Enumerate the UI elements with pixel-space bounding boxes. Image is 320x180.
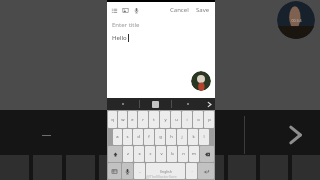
button[interactable]: Profile photo (191, 71, 211, 91)
staticText: x (138, 151, 141, 157)
button[interactable]: b (167, 146, 177, 162)
button[interactable]: p (204, 111, 214, 128)
staticText: n (182, 151, 185, 157)
staticText: English (160, 169, 172, 174)
staticText: o (197, 117, 200, 123)
button[interactable]: More suggestions (203, 98, 215, 110)
staticText: Cancel (170, 6, 189, 14)
button[interactable]: Insert image (121, 6, 130, 15)
button[interactable]: k (188, 129, 198, 145)
button[interactable]: , (134, 163, 145, 179)
staticText: r (142, 117, 144, 123)
button[interactable]: Space (146, 163, 185, 179)
button[interactable]: . (186, 163, 197, 179)
staticText: i (186, 117, 188, 123)
button[interactable]: n (178, 146, 188, 162)
staticText: l (203, 134, 205, 140)
button[interactable]: Cancel (168, 4, 191, 16)
button[interactable]: l (199, 129, 209, 145)
staticText: g (159, 134, 162, 140)
staticText: u (175, 117, 178, 123)
button[interactable] (172, 98, 203, 110)
staticText: p (208, 117, 211, 123)
button[interactable]: z (123, 146, 133, 162)
staticText: h (170, 134, 173, 140)
button[interactable]: w (118, 111, 127, 128)
staticText: 00:3:4 (291, 18, 302, 23)
button[interactable]: s (123, 129, 132, 145)
staticText: f (148, 134, 150, 140)
button[interactable]: x (134, 146, 144, 162)
button[interactable]: f (144, 129, 154, 145)
button[interactable]: Backspace (200, 146, 214, 162)
button[interactable]: m (189, 146, 199, 162)
button[interactable]: d (133, 129, 143, 145)
staticText: Save (196, 6, 210, 14)
staticText: d (137, 134, 140, 140)
button[interactable]: t (149, 111, 159, 128)
staticText: e (131, 117, 134, 123)
button[interactable]: Checklist (110, 6, 119, 15)
staticText: b (171, 151, 174, 157)
button[interactable]: Next video (280, 120, 310, 150)
staticText: t (153, 117, 155, 123)
staticText: Enter title (112, 21, 140, 29)
staticText: s (126, 134, 129, 140)
button[interactable]: j (177, 129, 187, 145)
staticText: . (191, 168, 193, 174)
staticText: a (116, 134, 119, 140)
staticText: y (164, 117, 167, 123)
button[interactable]: y (160, 111, 170, 128)
button[interactable]: Channel thumbnail (277, 1, 315, 39)
staticText: m (192, 151, 196, 157)
button[interactable]: r (138, 111, 148, 128)
button[interactable]: Enter (198, 163, 214, 179)
staticText: w (121, 117, 125, 123)
button[interactable]: g (155, 129, 165, 145)
button[interactable]: q (108, 111, 117, 128)
staticText: q (111, 117, 114, 123)
button[interactable]: Save (194, 4, 212, 16)
button[interactable] (107, 98, 139, 110)
button[interactable]: Symbols (108, 163, 121, 179)
staticText: z (127, 151, 129, 157)
button[interactable]: Shift (108, 146, 122, 162)
staticText: Hello (112, 34, 127, 42)
button[interactable]: Voice input (122, 163, 133, 179)
button[interactable]: c (145, 146, 155, 162)
button[interactable]: o (193, 111, 203, 128)
staticText: j (181, 134, 183, 140)
staticText: @TheMasterSore (146, 174, 177, 179)
button[interactable]: u (171, 111, 181, 128)
button[interactable]: v (156, 146, 166, 162)
staticText: , (139, 168, 141, 174)
button[interactable]: i (182, 111, 192, 128)
button[interactable]: h (166, 129, 176, 145)
button[interactable] (140, 98, 171, 110)
button[interactable]: a (113, 129, 122, 145)
staticText: c (149, 151, 152, 157)
staticText: v (160, 151, 163, 157)
button[interactable]: e (128, 111, 137, 128)
staticText: k (192, 134, 195, 140)
button[interactable]: Voice note (132, 6, 141, 15)
